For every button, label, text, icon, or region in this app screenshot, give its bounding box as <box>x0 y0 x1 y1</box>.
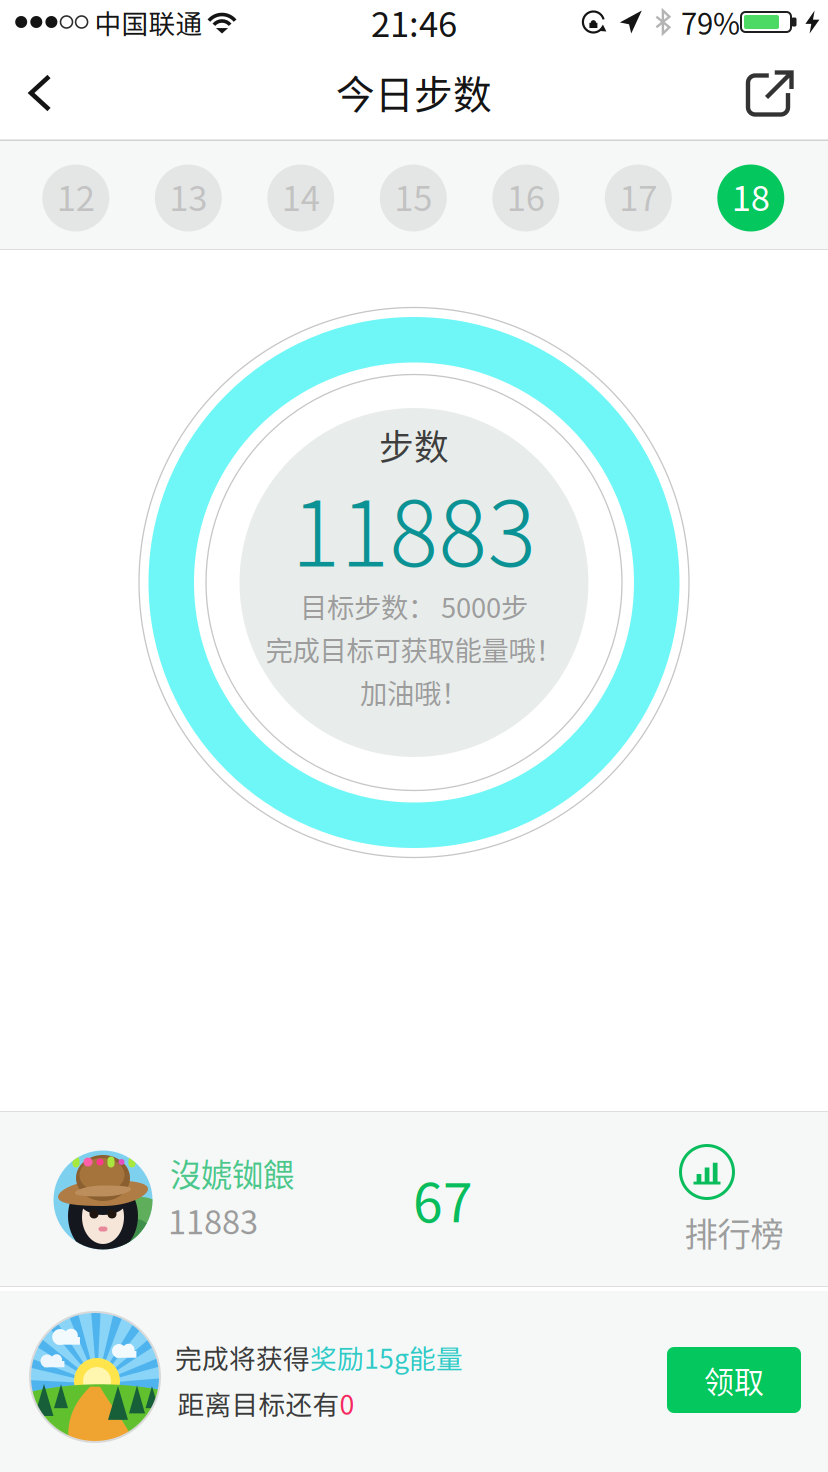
button[interactable]: 18 <box>717 164 784 231</box>
staticText: 奖励15g能量 <box>310 1338 463 1376</box>
staticText: 12 <box>57 171 95 221</box>
staticText: 完成将获得 <box>175 1338 310 1376</box>
staticText: 21:46 <box>371 0 457 47</box>
button[interactable]: 17 <box>605 164 672 231</box>
staticText: 步数 <box>379 420 449 470</box>
staticText: 0 <box>339 1384 354 1422</box>
staticText: 目标步数： 5000步 <box>300 586 528 626</box>
staticText: 17 <box>619 171 657 221</box>
staticText: 领取 <box>704 1358 764 1402</box>
staticText: 67 <box>413 1160 473 1238</box>
button[interactable]: 14 <box>267 164 334 231</box>
staticText: 今日步数 <box>336 64 492 120</box>
staticText: 16 <box>507 171 545 221</box>
staticText: 加油哦！ <box>360 672 468 712</box>
staticText: 沒婋铷餵 <box>170 1150 294 1196</box>
button[interactable]: Share <box>730 46 810 140</box>
staticText: 15 <box>394 171 432 221</box>
staticText: 11883 <box>291 461 536 593</box>
staticText: 完成目标可获取能量哦！ <box>265 629 562 669</box>
staticText: 11883 <box>168 1196 258 1244</box>
staticText: 13 <box>169 171 207 221</box>
button[interactable]: 沒婋铷餵 <box>0 1111 828 1287</box>
button[interactable]: 13 <box>155 164 222 231</box>
button[interactable]: Back <box>0 46 80 140</box>
button[interactable]: 16 <box>492 164 559 231</box>
staticText: 79% <box>681 1 740 43</box>
staticText: 排行榜 <box>684 1208 783 1256</box>
button[interactable]: 领取 <box>667 1347 801 1413</box>
button[interactable]: 12 <box>42 164 109 231</box>
staticText: 中国联通 <box>94 3 202 41</box>
button[interactable]: 15 <box>380 164 447 231</box>
staticText: 距离目标还有 <box>177 1384 339 1422</box>
staticText: 14 <box>282 171 320 221</box>
staticText: 18 <box>732 171 770 221</box>
